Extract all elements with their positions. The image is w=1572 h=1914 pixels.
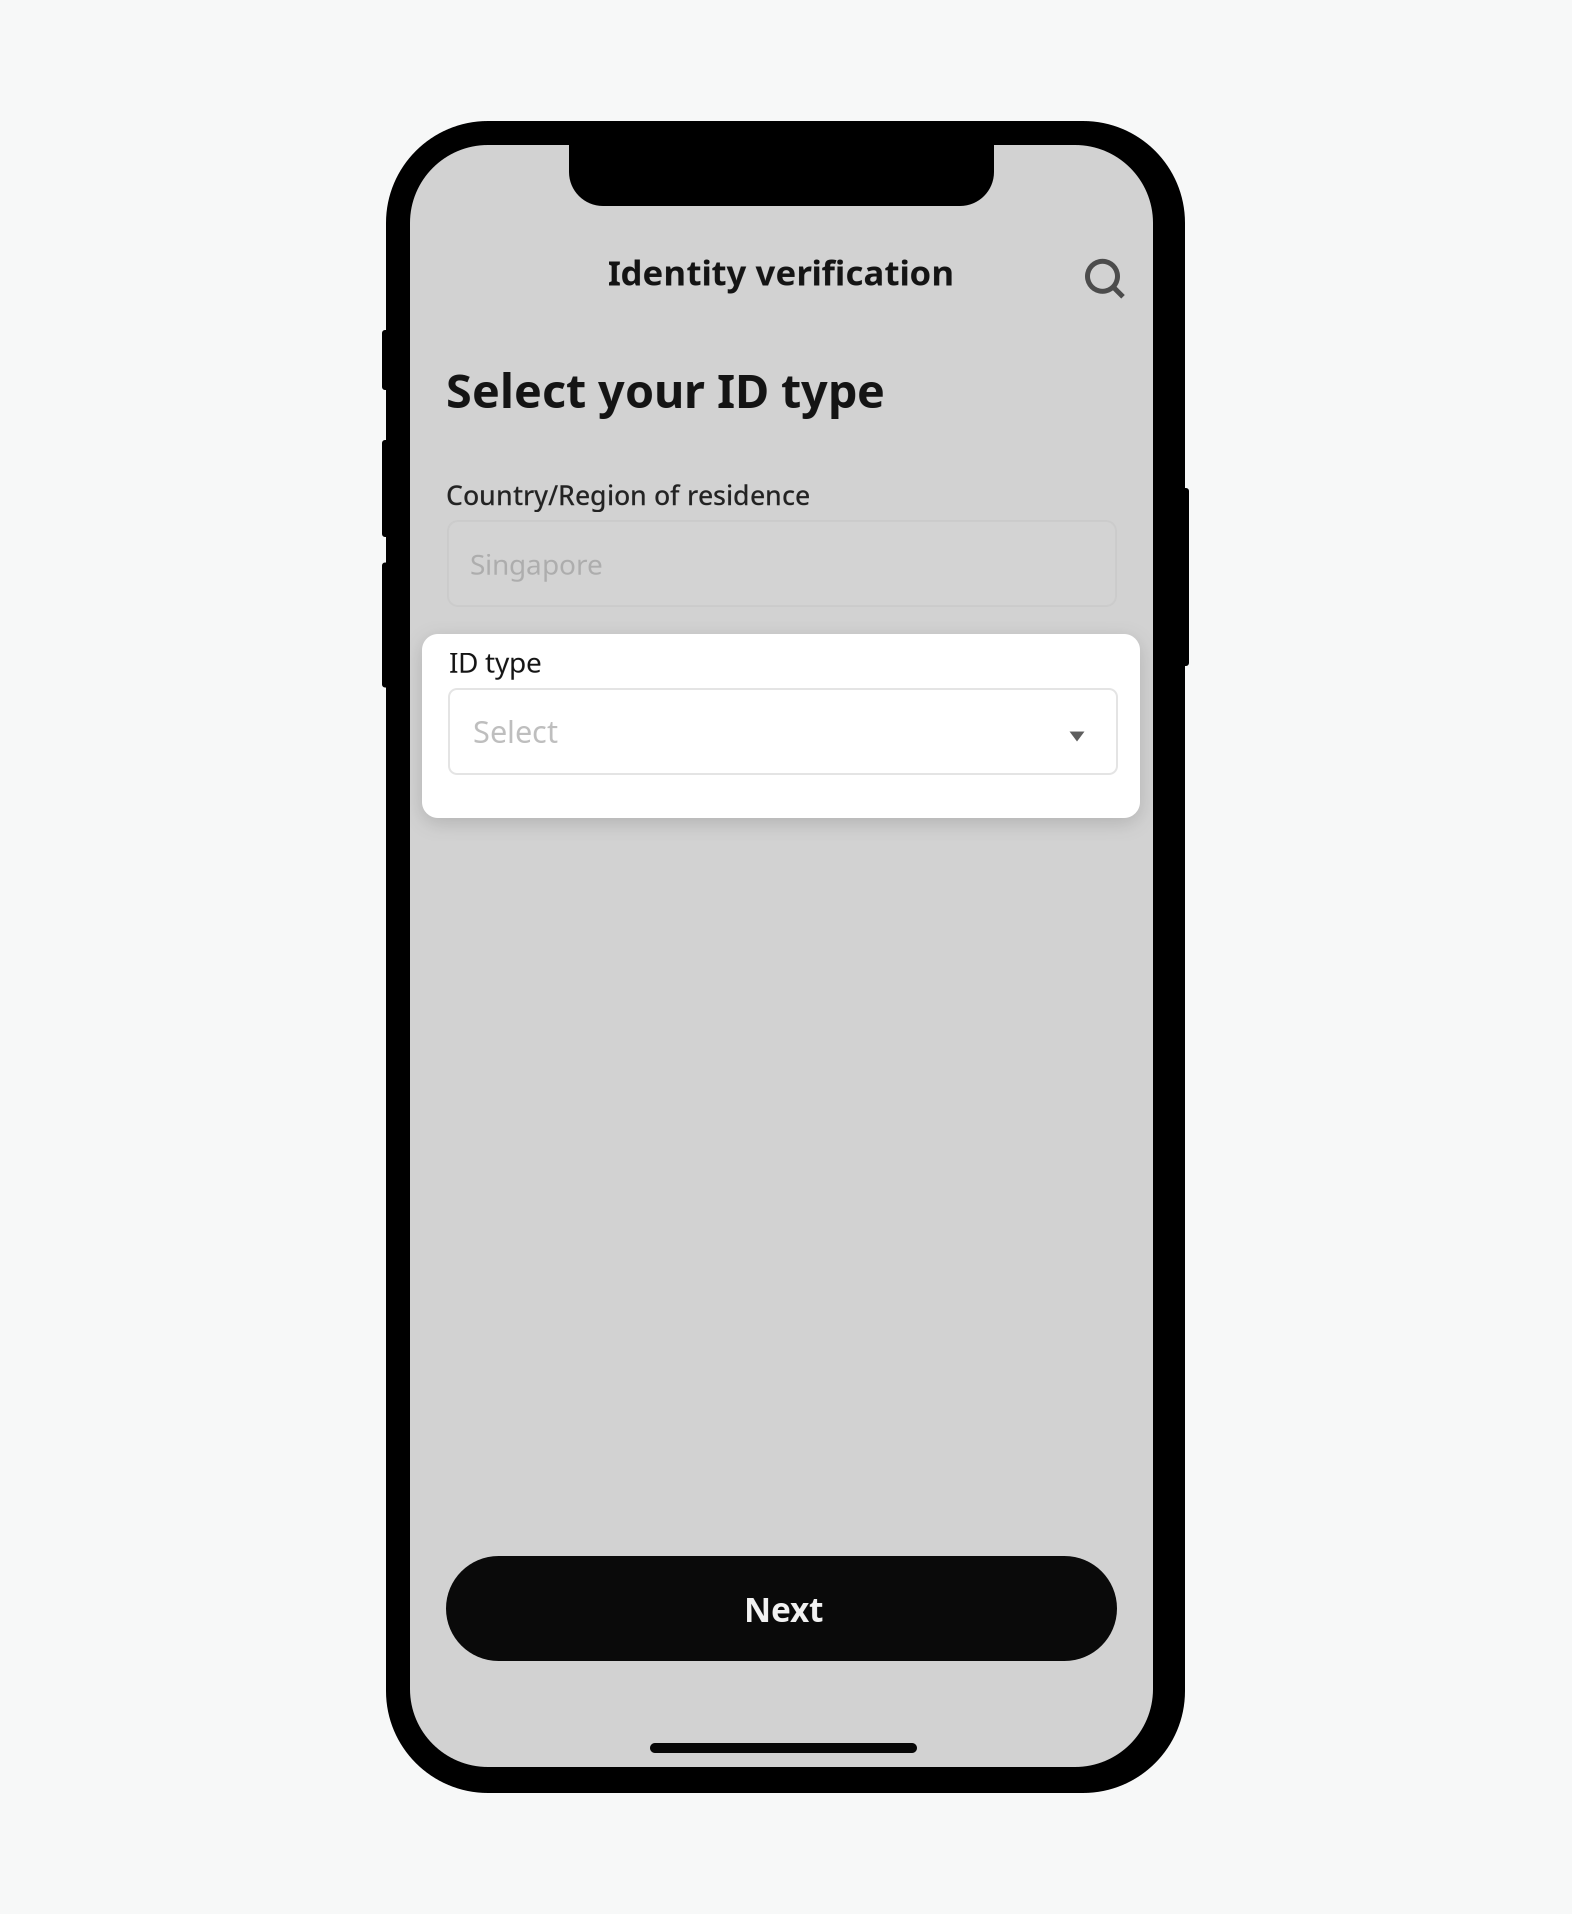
- staticText: Identity verification: [607, 249, 954, 295]
- staticText: Country/Region of residence: [446, 477, 810, 513]
- staticText: Select your ID type: [446, 359, 885, 421]
- staticText: Select: [473, 711, 558, 751]
- staticText: Next: [744, 1587, 823, 1631]
- staticText: Singapore: [470, 545, 603, 583]
- button[interactable]: Next: [446, 1556, 1117, 1661]
- button[interactable]: ID type, Select: [449, 689, 1117, 774]
- staticText: ID type: [449, 643, 542, 681]
- button[interactable]: Search: [1082, 256, 1126, 300]
- button[interactable]: Identity verification: [601, 246, 961, 298]
